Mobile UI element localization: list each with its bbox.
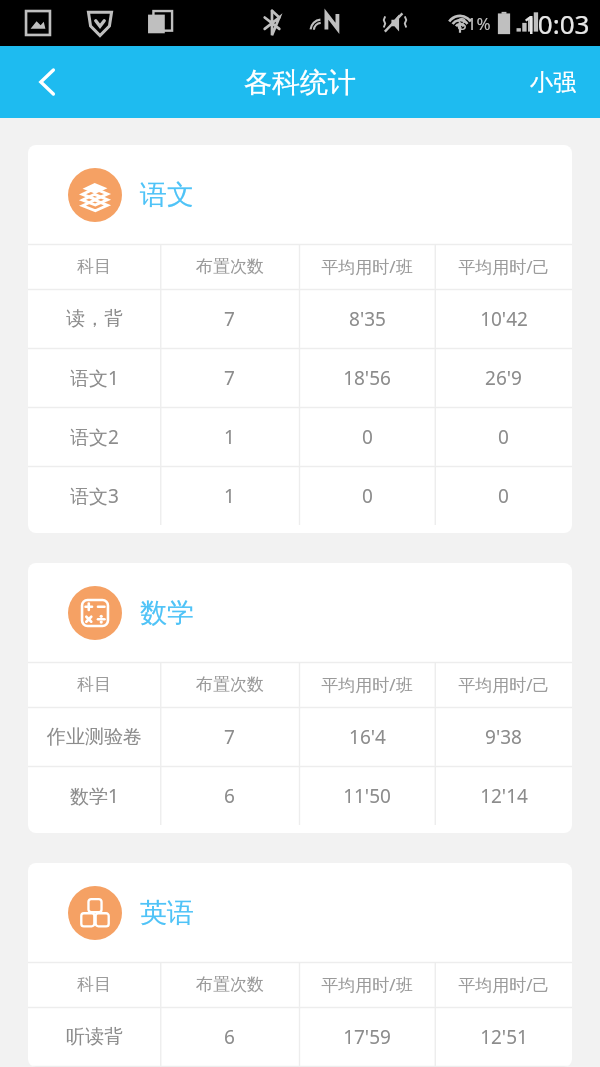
staticText: 6 [224, 783, 235, 809]
staticText: 8'35 [349, 306, 386, 332]
staticText: 语文3 [70, 483, 119, 509]
staticText: 布置次数 [196, 674, 264, 695]
staticText: 各科统计 [244, 65, 356, 100]
button[interactable]: 英语 [28, 863, 572, 1067]
staticText: 10'42 [480, 306, 528, 332]
staticText: 数学1 [70, 783, 119, 809]
staticText: 10:03 [523, 6, 590, 41]
other: 英语 [68, 886, 122, 940]
staticText: 数学 [140, 596, 194, 630]
staticText: 11'50 [343, 783, 391, 809]
staticText: 平均用时/班 [321, 973, 413, 996]
staticText: 7 [224, 724, 235, 750]
staticText: 12'14 [480, 783, 528, 809]
staticText: 7 [224, 365, 235, 391]
staticText: 语文2 [70, 424, 119, 450]
staticText: 18'56 [343, 365, 391, 391]
staticText: 12'51 [480, 1024, 528, 1050]
staticText: 0 [498, 483, 509, 509]
other: 语文 [68, 168, 122, 222]
staticText: 0 [362, 483, 373, 509]
staticText: 81% [457, 12, 491, 35]
staticText: 7 [224, 306, 235, 332]
staticText: 英语 [140, 896, 194, 930]
staticText: 作业测验卷 [47, 725, 142, 749]
staticText: 16'4 [349, 724, 386, 750]
staticText: 语文 [140, 178, 194, 212]
other: 数学 [68, 586, 122, 640]
staticText: 平均用时/班 [321, 673, 413, 696]
button[interactable]: Back [0, 46, 96, 118]
staticText: 26'9 [485, 365, 522, 391]
staticText: 科目 [77, 674, 111, 695]
staticText: 听读背 [66, 1025, 123, 1049]
staticText: 平均用时/己 [458, 673, 550, 696]
staticText: 读，背 [66, 307, 123, 331]
staticText: 平均用时/己 [458, 255, 550, 278]
staticText: 0 [498, 424, 509, 450]
staticText: 0 [362, 424, 373, 450]
staticText: 科目 [77, 974, 111, 995]
staticText: 平均用时/班 [321, 255, 413, 278]
staticText: 布置次数 [196, 974, 264, 995]
staticText: 小强 [530, 68, 576, 97]
button[interactable]: 语文 [28, 145, 572, 533]
staticText: 语文1 [70, 365, 119, 391]
staticText: 17'59 [343, 1024, 391, 1050]
staticText: 6 [224, 1024, 235, 1050]
button[interactable]: 数学 [28, 563, 572, 833]
staticText: 1 [224, 483, 235, 509]
staticText: 9'38 [485, 724, 522, 750]
button[interactable]: 小强 [530, 46, 576, 118]
staticText: 平均用时/己 [458, 973, 550, 996]
staticText: 布置次数 [196, 256, 264, 277]
staticText: 科目 [77, 256, 111, 277]
staticText: 1 [224, 424, 235, 450]
